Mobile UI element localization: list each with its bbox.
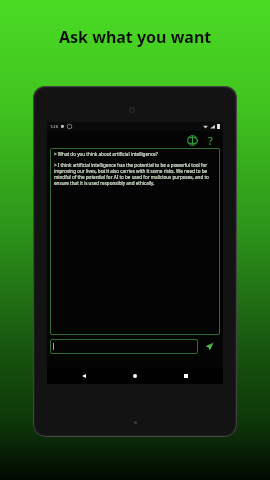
staticText: 1:26 xyxy=(50,124,58,129)
button[interactable]: Send xyxy=(198,339,220,354)
staticText: Ask what you want xyxy=(59,26,212,48)
staticText: ? xyxy=(208,133,213,147)
button[interactable]: Home xyxy=(121,368,149,384)
button[interactable]: Help xyxy=(203,133,217,147)
button[interactable]: Back xyxy=(70,368,98,384)
staticText: > What do you think about artificial int… xyxy=(54,151,158,157)
button[interactable]: Recents xyxy=(172,368,200,384)
staticText: > I think artificial intelligence has th… xyxy=(54,162,216,186)
button[interactable] xyxy=(53,339,195,354)
button[interactable]: Brain xyxy=(185,133,199,147)
